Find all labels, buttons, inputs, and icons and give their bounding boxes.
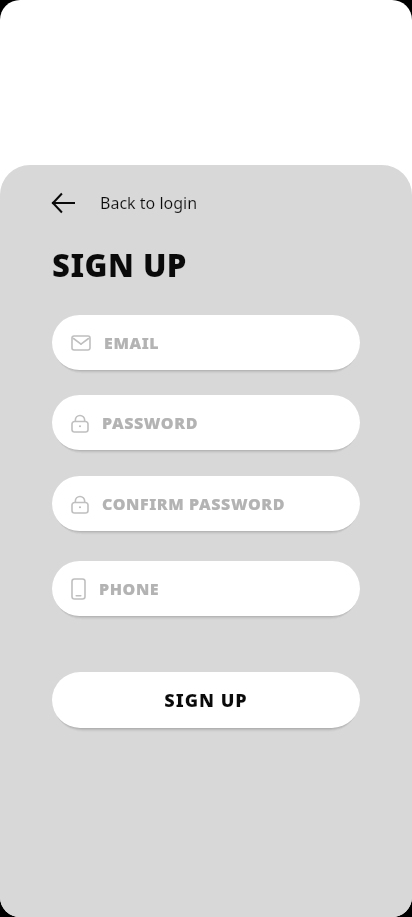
button[interactable]: SIGN UP <box>52 672 360 728</box>
staticText: SIGN UP <box>52 244 187 286</box>
staticText: PHONE <box>99 578 160 600</box>
button[interactable]: EMAIL <box>52 315 360 370</box>
button[interactable]: Back <box>44 186 206 220</box>
button[interactable]: PASSWORD <box>52 395 360 450</box>
staticText: SIGN UP <box>164 688 248 713</box>
button[interactable]: PHONE <box>52 561 360 616</box>
staticText: Back to login <box>100 192 198 214</box>
other: Back <box>52 194 74 212</box>
staticText: CONFIRM PASSWORD <box>102 493 286 515</box>
button[interactable]: CONFIRM PASSWORD <box>52 476 360 531</box>
staticText: PASSWORD <box>102 412 198 434</box>
staticText: EMAIL <box>104 332 160 354</box>
